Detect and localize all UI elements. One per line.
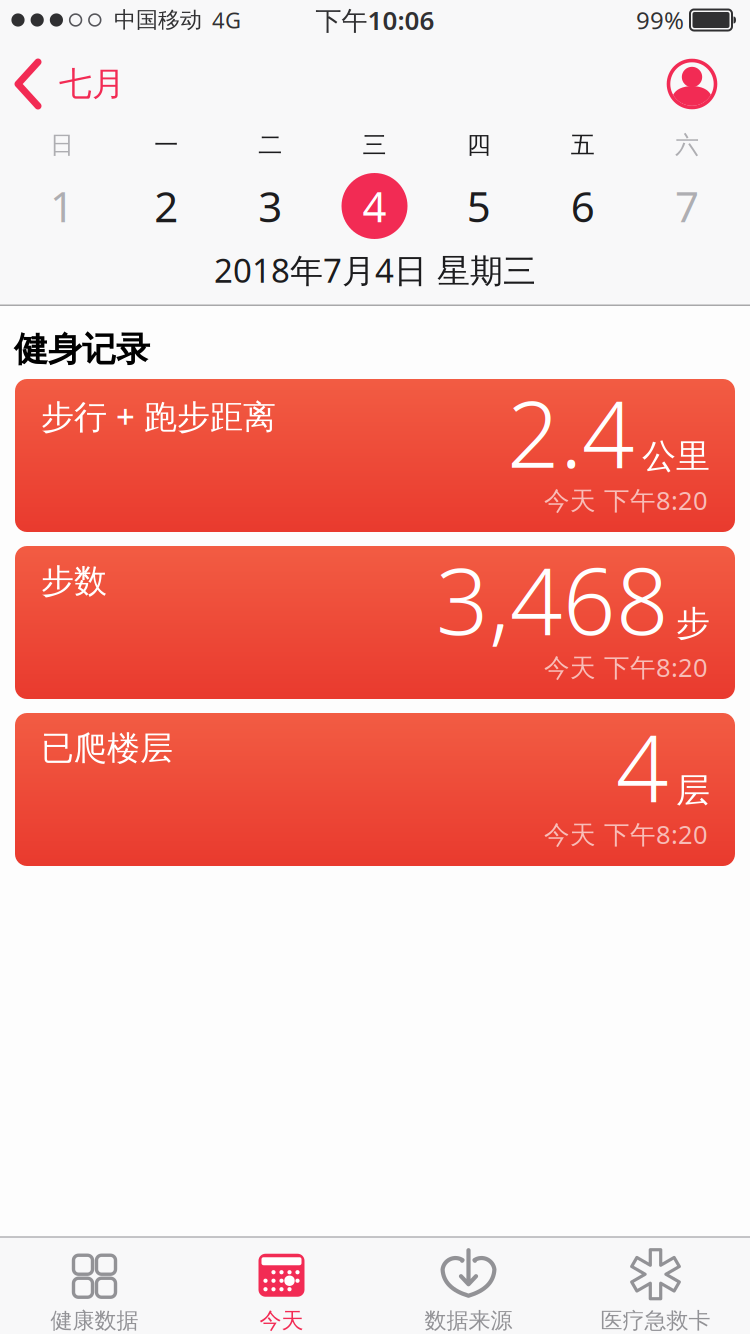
button[interactable]: 步数 <box>15 546 735 699</box>
button[interactable]: 1 <box>50 178 74 234</box>
staticText: 2 <box>154 178 178 234</box>
button[interactable]: 2 <box>154 178 178 234</box>
staticText: 步数 <box>41 561 107 601</box>
staticText: 公里 <box>642 436 710 477</box>
staticText: 6 <box>571 178 595 234</box>
staticText: 层 <box>676 770 710 811</box>
staticText: 健康数据 <box>50 1307 138 1334</box>
staticText: 4 <box>362 178 386 234</box>
button[interactable]: 七月 <box>0 40 125 128</box>
button[interactable]: 7 <box>675 178 699 234</box>
button[interactable]: 5 <box>467 178 491 234</box>
staticText: 4G <box>212 5 241 35</box>
button[interactable]: 医疗急救卡 <box>562 1245 749 1334</box>
staticText: 3,468 <box>436 538 669 660</box>
staticText: 四 <box>467 130 491 160</box>
staticText: 今天 下午8:20 <box>544 650 708 684</box>
button[interactable]: 6 <box>571 178 595 234</box>
staticText: 一 <box>154 130 178 160</box>
button[interactable]: 数据来源 <box>375 1245 562 1334</box>
staticText: 步行 + 跑步距离 <box>41 394 276 438</box>
button[interactable]: 今天 <box>188 1245 375 1334</box>
button[interactable]: 步行 + 跑步距离 <box>15 379 735 532</box>
staticText: 七月 <box>59 64 125 104</box>
staticText: 2.4 <box>507 371 635 493</box>
staticText: 1 <box>50 178 74 234</box>
staticText: 今天 <box>259 1307 303 1334</box>
staticText: 医疗急救卡 <box>600 1307 710 1334</box>
staticText: 六 <box>675 130 699 160</box>
button[interactable] <box>666 58 718 110</box>
staticText: 中国移动 <box>114 6 202 33</box>
staticText: 3 <box>258 178 282 234</box>
staticText: 99% <box>636 4 684 36</box>
staticText: 健身记录 <box>14 329 150 370</box>
staticText: 步 <box>676 603 710 644</box>
button[interactable]: 健康数据 <box>1 1245 188 1334</box>
button[interactable]: 4 <box>362 178 386 234</box>
staticText: 三 <box>362 130 386 160</box>
staticText: 4 <box>616 705 669 827</box>
staticText: 数据来源 <box>424 1307 512 1334</box>
staticText: 已爬楼层 <box>41 728 173 768</box>
staticText: 7 <box>675 178 699 234</box>
staticText: 下午10:06 <box>315 3 434 37</box>
staticText: 五 <box>571 130 595 160</box>
staticText: 2018年7月4日 星期三 <box>214 248 536 292</box>
staticText: 日 <box>50 130 74 160</box>
staticText: 5 <box>467 178 491 234</box>
button[interactable]: 3 <box>258 178 282 234</box>
staticText: 二 <box>258 130 282 160</box>
staticText: 今天 下午8:20 <box>544 817 708 851</box>
button[interactable]: 已爬楼层 <box>15 713 735 866</box>
staticText: 今天 下午8:20 <box>544 483 708 517</box>
